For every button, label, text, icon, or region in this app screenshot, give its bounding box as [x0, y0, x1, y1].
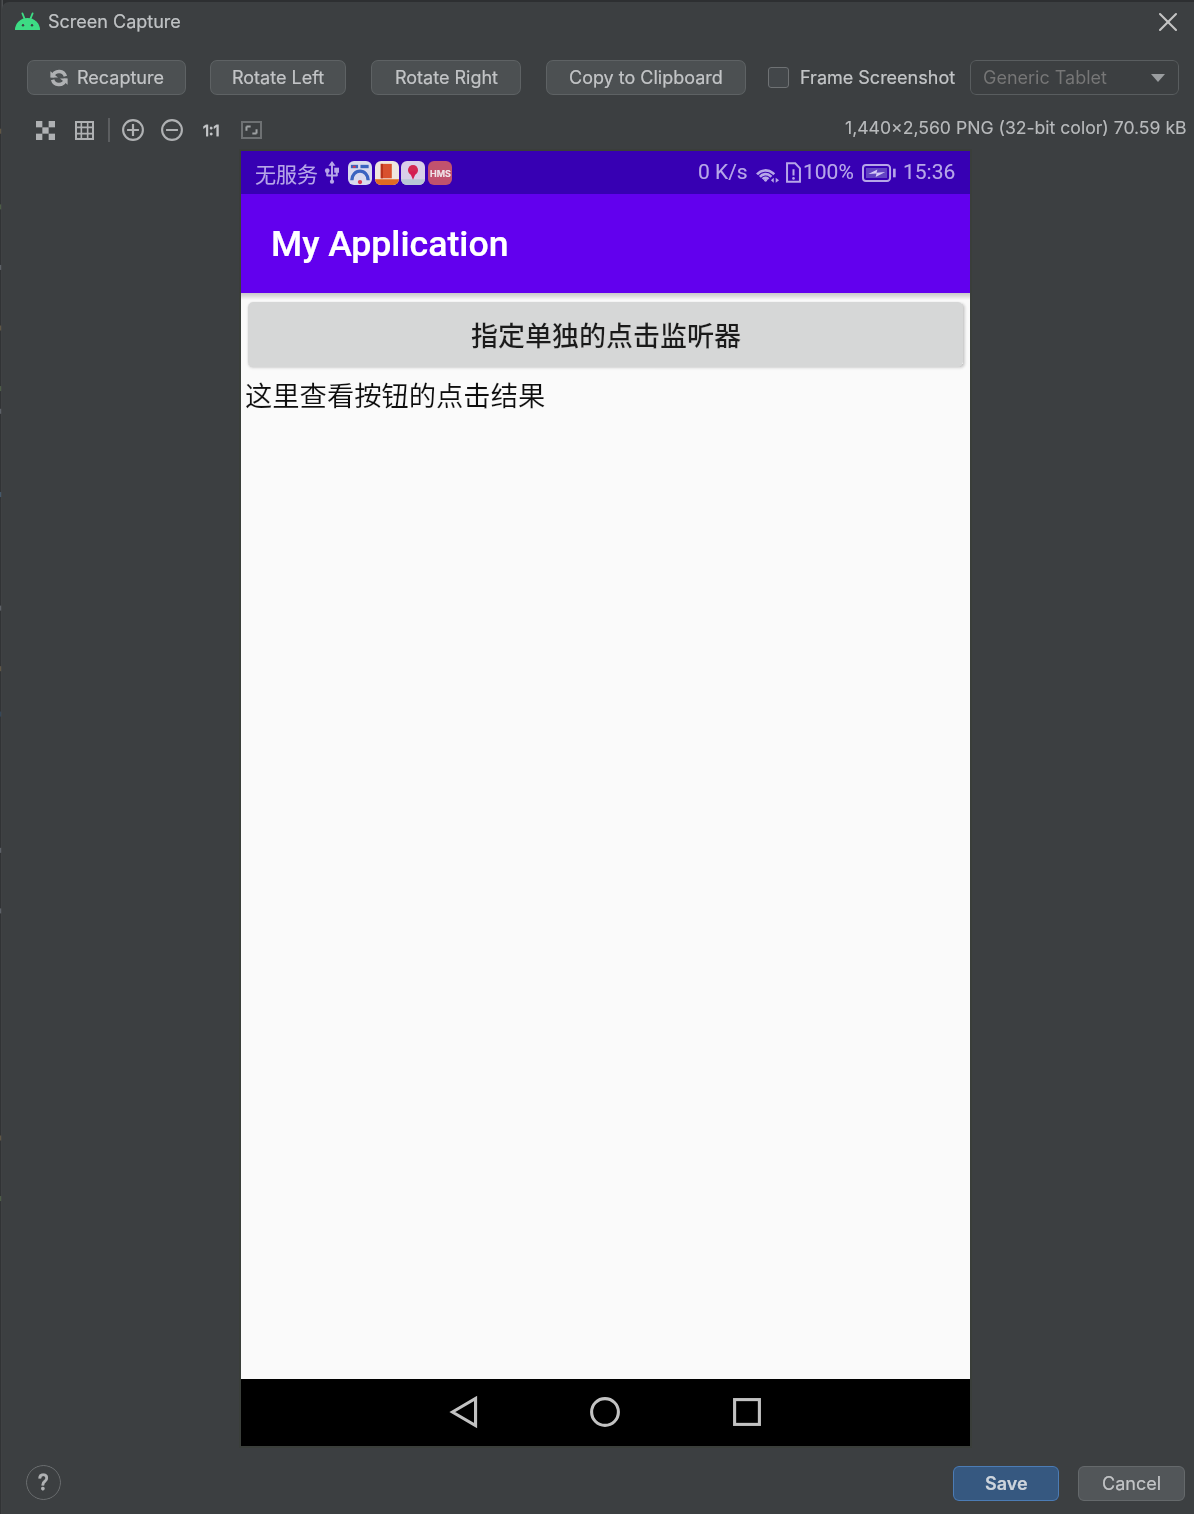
button[interactable]: Rotate Left [210, 60, 346, 95]
staticText: HMS [430, 168, 451, 179]
staticText: Rotate Right [395, 67, 498, 89]
button[interactable]: Recapture [27, 60, 186, 95]
button[interactable]: Recents [719, 1384, 775, 1440]
staticText: 指定单独的点击监听器 [471, 315, 741, 354]
staticText: Rotate Left [232, 67, 325, 89]
button[interactable]: Home [577, 1384, 633, 1440]
button[interactable]: Save [953, 1466, 1059, 1501]
button[interactable]: Cancel [1078, 1466, 1185, 1501]
staticText: Screen Capture [48, 11, 181, 33]
button[interactable]: Close [1151, 5, 1185, 39]
staticText: 1:1 [203, 121, 220, 139]
button[interactable]: Frame Screenshot [768, 60, 956, 95]
staticText: 100% [803, 160, 854, 185]
button[interactable]: Fit to screen [237, 116, 265, 144]
staticText: 15:36 [903, 160, 956, 185]
button[interactable]: Copy to Clipboard [546, 60, 746, 95]
button[interactable]: Help [26, 1465, 61, 1500]
staticText: 这里查看按钮的点击结果 [245, 374, 546, 414]
staticText: 0 K/s [698, 160, 748, 185]
button[interactable]: Back [436, 1384, 492, 1440]
staticText: 1,440x2,560 PNG (32-bit color) 70.59 kB [845, 117, 1187, 138]
staticText: ? [38, 1470, 49, 1495]
button[interactable]: Zoom In [119, 116, 147, 144]
button[interactable]: Grid [70, 116, 98, 144]
staticText: Generic Tablet [983, 67, 1107, 89]
staticText: Frame Screenshot [800, 67, 956, 89]
button[interactable]: 指定单独的点击监听器 [248, 302, 963, 367]
staticText: Cancel [1102, 1473, 1162, 1495]
staticText: Save [985, 1473, 1028, 1495]
staticText: 无服务 [255, 158, 318, 188]
staticText: My Application [271, 223, 509, 265]
button[interactable]: Actual size [196, 115, 226, 145]
button[interactable]: Zoom Out [158, 116, 186, 144]
staticText: Copy to Clipboard [569, 67, 723, 89]
button[interactable]: Transparency [31, 116, 59, 144]
button[interactable]: Rotate Right [371, 60, 521, 95]
staticText: Recapture [77, 67, 164, 89]
button[interactable]: Generic Tablet [970, 60, 1179, 95]
